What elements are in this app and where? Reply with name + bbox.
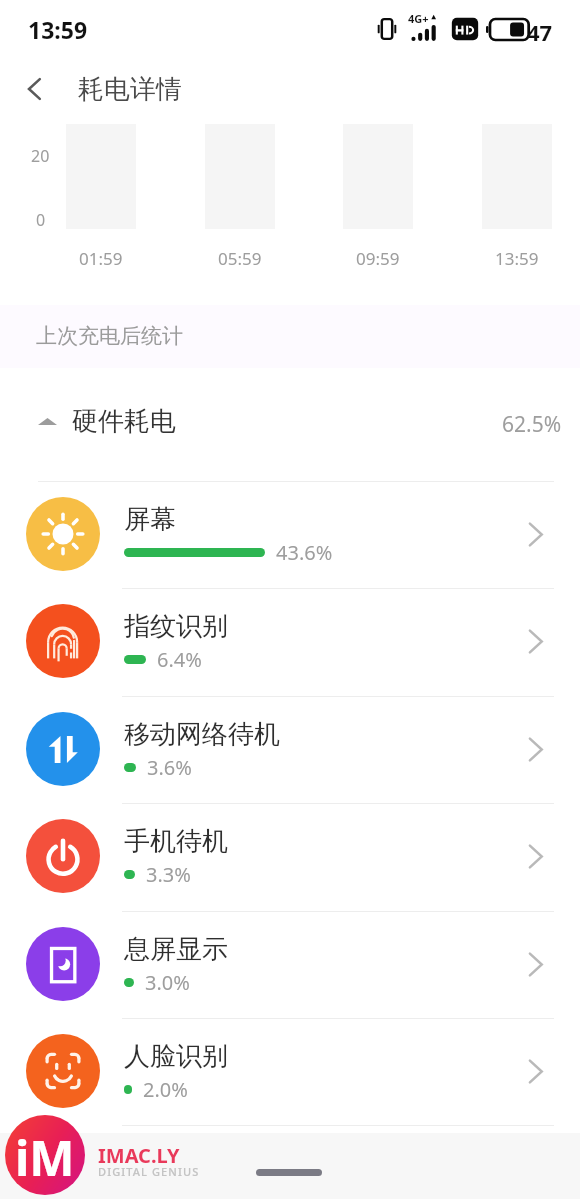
staticText: iM [15,1125,75,1190]
staticText: 3.0% [145,969,190,996]
staticText: 2.0% [143,1076,188,1103]
staticText: 13:59 [495,247,539,270]
staticText: 手机待机 [124,825,228,858]
staticText: 硬件耗电 [72,405,176,438]
button[interactable]: Back [11,65,59,113]
staticText: IMAC.LY [98,1142,180,1169]
staticText: 耗电详情 [78,73,182,106]
staticText: 屏幕 [124,503,176,536]
staticText: 47 [527,17,553,47]
staticText: 上次充电后统计 [36,323,183,349]
staticText: 息屏显示 [124,933,228,966]
staticText: 62.5% [502,410,562,439]
staticText: 13:59 [28,14,88,45]
button[interactable]: 指纹识别 [0,588,580,695]
staticText: 09:59 [356,247,400,270]
staticText: 05:59 [218,247,262,270]
staticText: DIGITAL GENIUS [98,1164,200,1179]
button[interactable]: 息屏显示 [0,911,580,1018]
button[interactable]: 手机待机 [0,803,580,910]
staticText: 移动网络待机 [124,718,280,751]
button[interactable]: 移动网络待机 [0,696,580,803]
button[interactable]: 人脸识别 [0,1018,580,1125]
staticText: 4G+ [408,11,429,26]
staticText: 20 [31,145,50,167]
staticText: 43.6% [276,539,333,566]
staticText: 人脸识别 [124,1040,228,1073]
staticText: 3.3% [146,861,191,888]
button[interactable]: 屏幕 [0,481,580,588]
staticText: 0 [36,209,46,231]
staticText: 3.6% [147,754,192,781]
staticText: 01:59 [79,247,123,270]
staticText: 6.4% [157,646,202,673]
button[interactable]: 硬件耗电 [0,390,580,454]
staticText: 指纹识别 [124,610,228,643]
